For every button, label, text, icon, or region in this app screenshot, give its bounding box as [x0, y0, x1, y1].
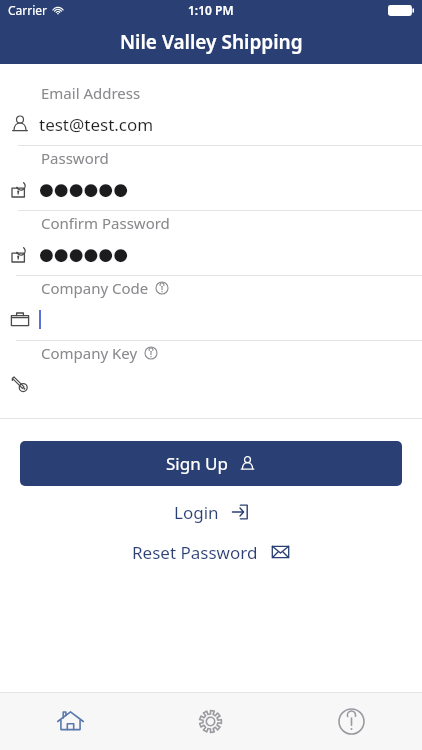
- button[interactable]: Home: [0, 693, 140, 750]
- button[interactable]: Password: [0, 146, 422, 210]
- staticText: Password: [41, 148, 109, 168]
- staticText: Email Address: [41, 83, 141, 103]
- button[interactable]: Email Address: [0, 81, 422, 145]
- button[interactable]: Company Key: [0, 341, 422, 405]
- staticText: Company Key: [41, 343, 138, 363]
- staticText: ●●●●●●: [39, 179, 129, 199]
- button[interactable]: Sign Up: [20, 441, 402, 486]
- staticText: Company Code: [41, 278, 149, 298]
- staticText: Sign Up: [166, 452, 228, 475]
- staticText: Confirm Password: [41, 213, 170, 233]
- button[interactable]: Help: [281, 693, 422, 750]
- button[interactable]: Company Code: [0, 276, 422, 340]
- button[interactable]: Login: [0, 499, 422, 525]
- staticText: test@test.com: [39, 113, 154, 136]
- staticText: Reset Password: [132, 541, 258, 564]
- staticText: Nile Valley Shipping: [120, 29, 303, 55]
- staticText: ●●●●●●: [39, 244, 129, 264]
- staticText: Login: [174, 501, 219, 524]
- staticText: 1:10 PM: [188, 2, 234, 18]
- button[interactable]: Reset Password: [0, 539, 422, 565]
- button[interactable]: Settings: [140, 693, 281, 750]
- staticText: Carrier: [8, 2, 48, 18]
- button[interactable]: Confirm Password: [0, 211, 422, 275]
